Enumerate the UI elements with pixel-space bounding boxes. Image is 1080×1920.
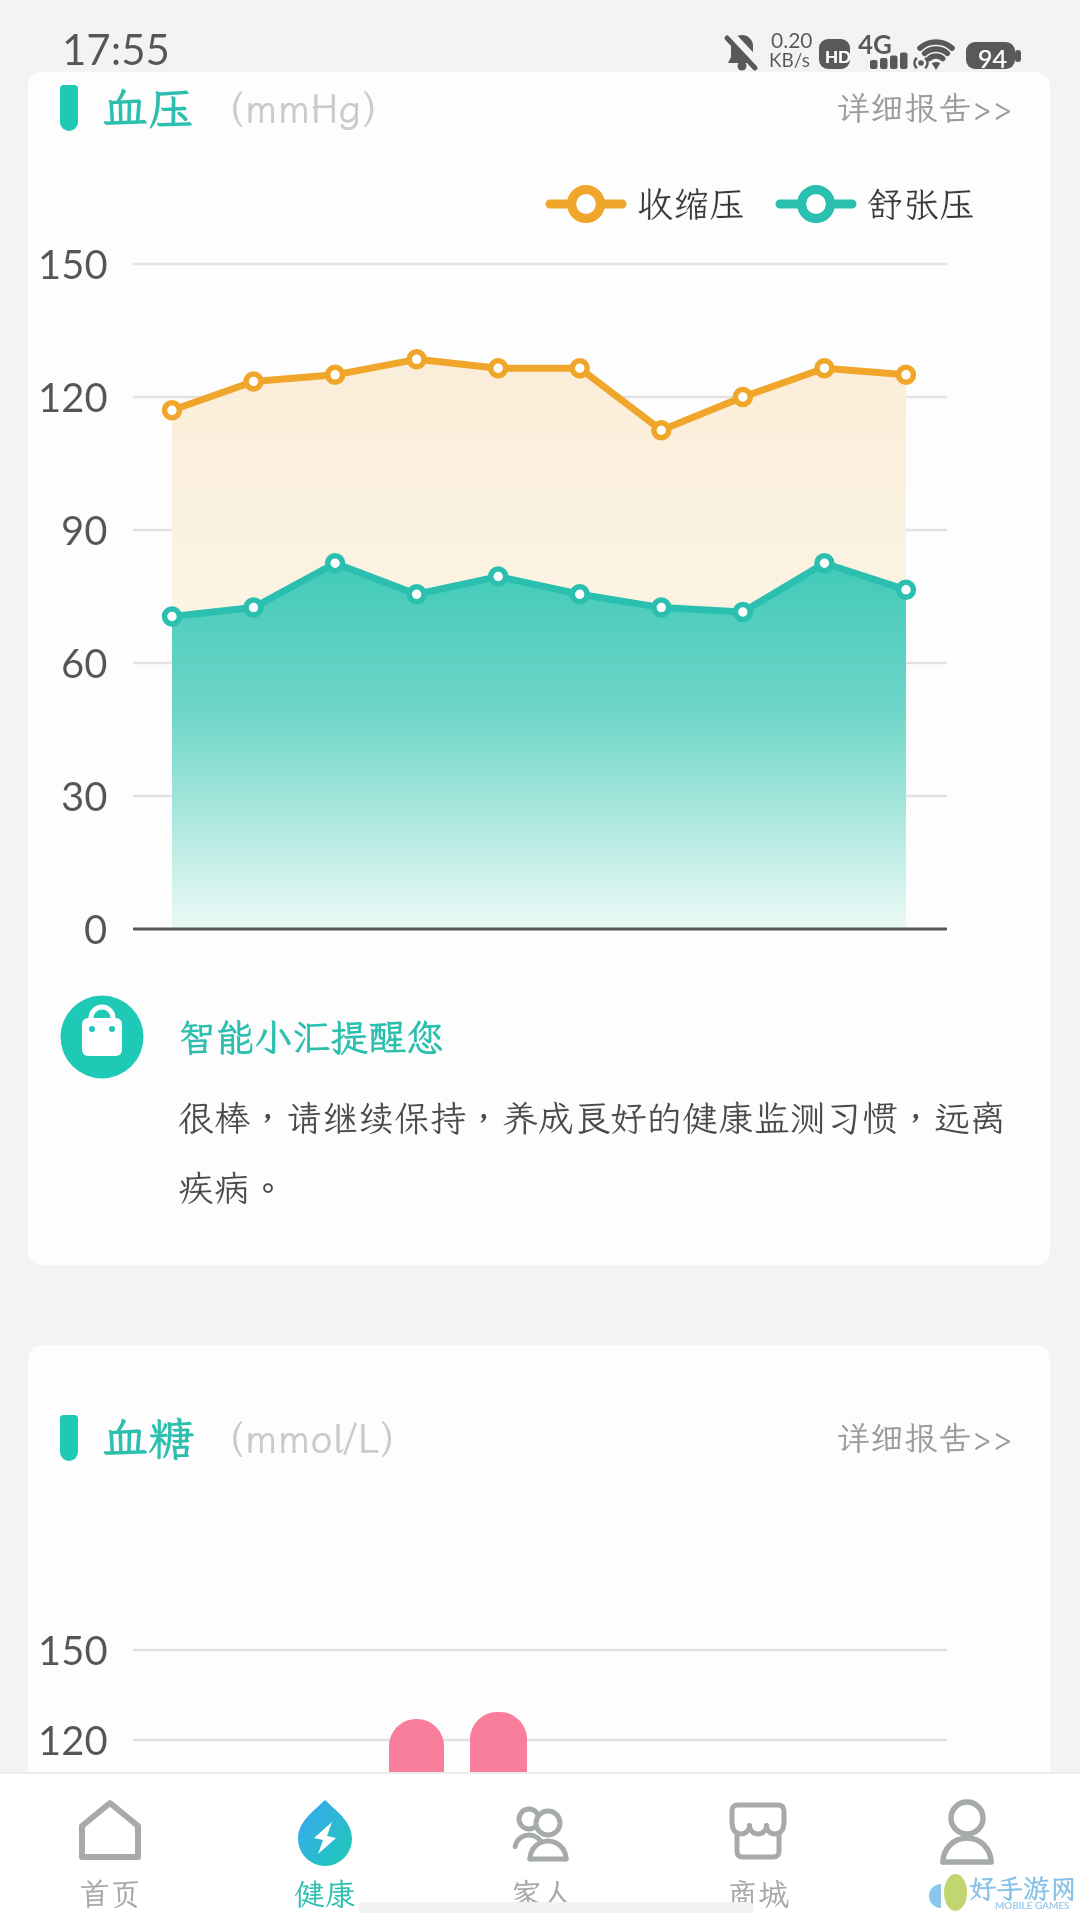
button[interactable]: 首页 (35, 1786, 185, 1914)
staticText: 收缩压 (637, 180, 746, 227)
staticText: KB/s (769, 48, 810, 71)
button[interactable]: 家人 (467, 1786, 617, 1914)
staticText: 4G (858, 28, 892, 59)
staticText: 0 (84, 905, 108, 953)
staticText: 血糖 (102, 1408, 194, 1469)
staticText: 很棒，请继续保持，养成良好的健康监测习惯，远离 (178, 1094, 1007, 1141)
button[interactable] (892, 1786, 1042, 1914)
staticText: （mmHg） (205, 82, 402, 135)
staticText: 60 (61, 639, 108, 687)
staticText: 150 (38, 240, 108, 288)
staticText: 智能小汇提醒您 (178, 1012, 445, 1062)
staticText: 健康 (294, 1873, 356, 1914)
staticText: 0.20 (771, 27, 813, 52)
staticText: 舒张压 (867, 180, 976, 227)
staticText: 首页 (79, 1873, 141, 1914)
staticText: 17:55 (62, 24, 170, 74)
staticText: 30 (61, 772, 108, 820)
staticText: （mmol/L） (205, 1412, 420, 1465)
staticText: 120 (38, 373, 108, 421)
staticText: 详细报告>> (836, 1415, 1013, 1460)
staticText: HD (825, 46, 852, 66)
staticText: 疾病。 (178, 1164, 287, 1211)
staticText: 150 (38, 1626, 108, 1674)
button[interactable]: 详细报告>> (813, 84, 1013, 130)
staticText: 家人 (511, 1873, 573, 1914)
button[interactable]: 详细报告>> (813, 1414, 1013, 1460)
staticText: MOBILE GAMES (995, 1899, 1070, 1911)
staticText: 商城 (727, 1873, 789, 1914)
button[interactable]: 商城 (683, 1786, 833, 1914)
staticText: 详细报告>> (836, 85, 1013, 130)
staticText: 好手游网 (969, 1870, 1077, 1906)
button[interactable]: 健康 (250, 1786, 400, 1914)
staticText: 94 (978, 43, 1008, 73)
staticText: 90 (61, 506, 108, 554)
staticText: 血压 (102, 78, 194, 139)
staticText: 120 (38, 1716, 108, 1764)
